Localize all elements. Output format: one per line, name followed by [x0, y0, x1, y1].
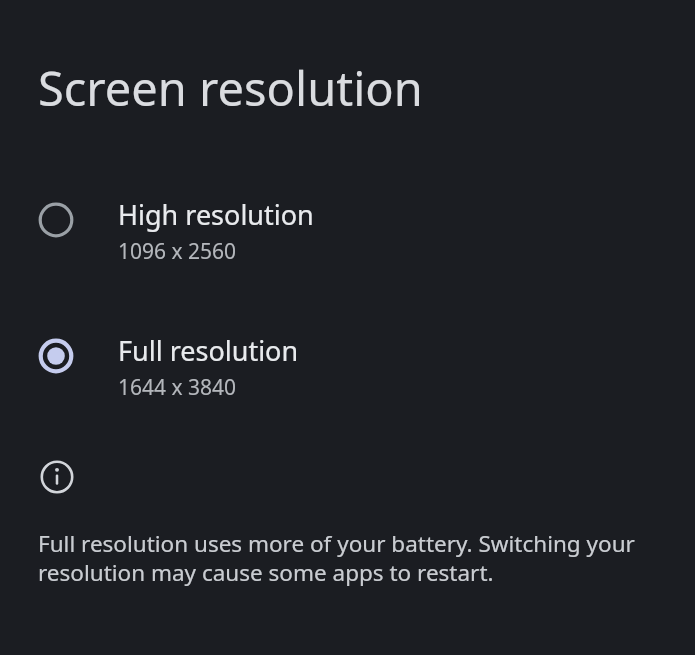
staticText: Screen resolution	[38, 56, 423, 120]
staticText: 1096 x 2560	[118, 237, 237, 266]
staticText: Full resolution	[118, 332, 299, 369]
staticText: Full resolution uses more of your batter…	[38, 528, 647, 587]
other: Information	[40, 460, 74, 494]
staticText: High resolution	[118, 196, 314, 233]
button[interactable]: Full resolution	[0, 318, 695, 416]
button[interactable]: High resolution	[0, 182, 695, 280]
staticText: 1644 x 3840	[118, 373, 237, 402]
